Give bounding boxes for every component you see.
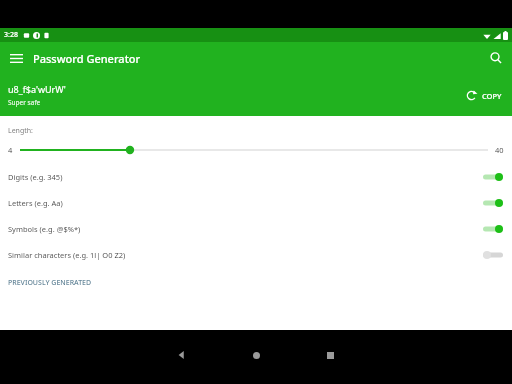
button[interactable]: Recent apps: [313, 338, 347, 372]
button[interactable]: Similar characters (e.g. 1l| O0 Z2): [0, 242, 512, 268]
staticText: 3:28: [4, 30, 18, 40]
staticText: Length:: [8, 126, 33, 136]
button[interactable]: PREVIOUSLY GENERATED: [4, 274, 96, 292]
staticText: Super safe: [8, 98, 41, 107]
staticText: 40: [495, 145, 504, 155]
staticText: u8_f$a'wUrW': [8, 83, 66, 95]
button[interactable]: Letters (e.g. Aa): [0, 190, 512, 216]
staticText: Symbols (e.g. @$%*): [8, 224, 482, 234]
staticText: Similar characters (e.g. 1l| O0 Z2): [8, 250, 482, 260]
button[interactable]: Back: [165, 338, 199, 372]
staticText: COPY: [482, 91, 502, 101]
button[interactable]: Digits (e.g. 345): [0, 164, 512, 190]
button[interactable]: Open navigation menu: [0, 42, 32, 74]
staticText: PREVIOUSLY GENERATED: [8, 278, 92, 288]
staticText: Password Generator: [33, 51, 141, 66]
staticText: 4: [8, 145, 13, 155]
staticText: Digits (e.g. 345): [8, 172, 482, 182]
button[interactable]: Home: [239, 338, 273, 372]
button[interactable]: Search: [480, 42, 512, 74]
staticText: Letters (e.g. Aa): [8, 198, 482, 208]
button[interactable]: COPY: [462, 86, 506, 105]
button[interactable]: Password length slider: [20, 142, 488, 158]
button[interactable]: Symbols (e.g. @$%*): [0, 216, 512, 242]
